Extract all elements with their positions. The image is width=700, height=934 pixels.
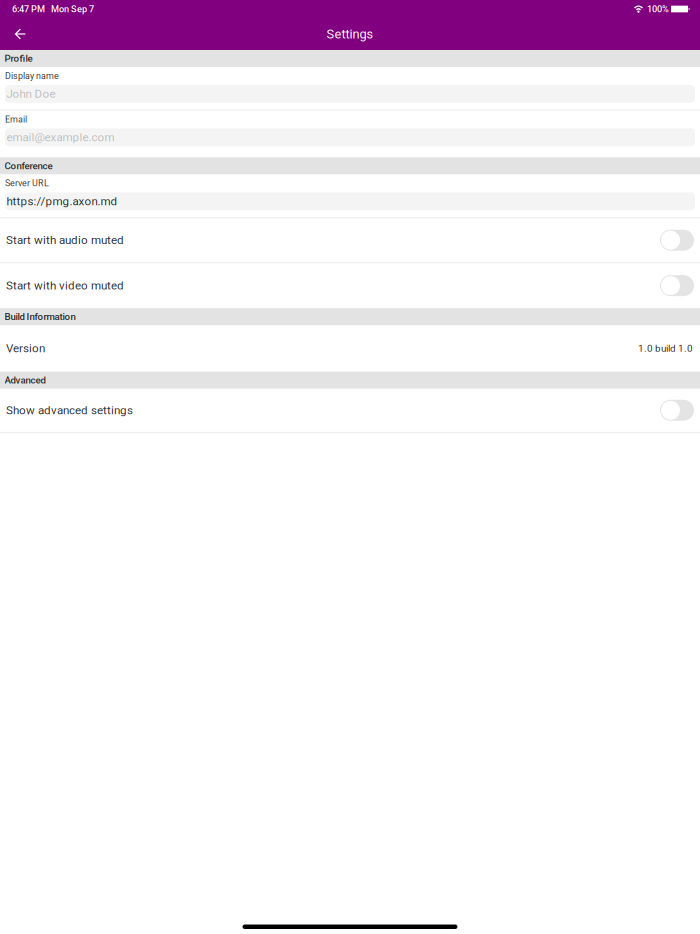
staticText: Build Information — [4, 311, 75, 322]
staticText: Advanced — [4, 374, 45, 386]
staticText: Conference — [4, 160, 52, 171]
staticText: Profile — [4, 53, 32, 64]
button[interactable]: Version — [0, 325, 700, 372]
button[interactable]: Show advanced settings — [0, 389, 700, 432]
button[interactable]: Back — [0, 18, 40, 50]
staticText: email@example.com — [6, 130, 114, 144]
staticText: Display name — [5, 71, 59, 81]
button[interactable]: Server URL — [0, 174, 700, 217]
staticText: Settings — [326, 26, 373, 41]
button[interactable]: Start with audio muted — [0, 218, 700, 262]
staticText: Start with video muted — [6, 279, 124, 292]
staticText: Server URL — [5, 178, 49, 189]
staticText: 6:47 PM — [12, 4, 45, 14]
button[interactable]: Email — [0, 110, 700, 157]
button[interactable]: Display name — [0, 67, 700, 109]
staticText: 100% — [647, 4, 669, 14]
staticText: Show advanced settings — [6, 403, 133, 417]
staticText: 1.0 build 1.0 — [638, 343, 693, 354]
staticText: Mon Sep 7 — [51, 4, 94, 14]
staticText: John Doe — [6, 87, 55, 101]
staticText: Email — [5, 114, 27, 125]
button[interactable]: Start with video muted — [0, 263, 700, 308]
staticText: Version — [6, 342, 45, 355]
staticText: Start with audio muted — [6, 233, 124, 247]
staticText: https://pmg.axon.md — [6, 194, 117, 208]
